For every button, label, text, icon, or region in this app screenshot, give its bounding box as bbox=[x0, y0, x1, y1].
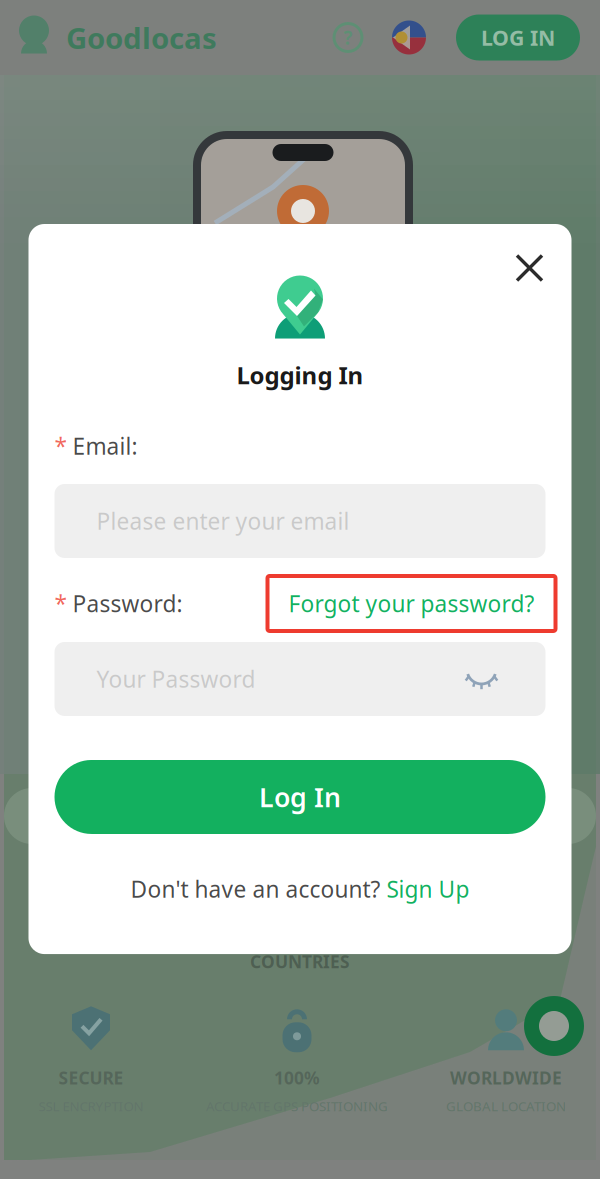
button[interactable]: Show password bbox=[464, 667, 498, 691]
staticText: LOG IN bbox=[481, 23, 555, 52]
staticText: Log In bbox=[259, 779, 341, 815]
staticText: Sign Up bbox=[386, 874, 469, 904]
staticText: WORLDWIDE bbox=[450, 1066, 562, 1089]
staticText: 100% bbox=[274, 1066, 320, 1089]
staticText: Email: bbox=[72, 431, 137, 461]
staticText: Password: bbox=[72, 588, 182, 618]
staticText: GLOBAL LOCATION bbox=[446, 1097, 566, 1115]
staticText: * bbox=[54, 431, 66, 461]
button[interactable]: Close bbox=[514, 253, 544, 283]
staticText: Goodlocas bbox=[66, 18, 217, 57]
staticText: Don't have an account? bbox=[130, 874, 386, 904]
staticText: Forgot your password? bbox=[288, 588, 534, 618]
staticText: Please enter your email bbox=[96, 506, 349, 536]
button[interactable]: Forgot your password? bbox=[267, 576, 555, 631]
staticText: * bbox=[54, 588, 66, 618]
staticText: SECURE bbox=[58, 1066, 123, 1089]
staticText: ACCURATE GPS POSITIONING bbox=[206, 1097, 388, 1115]
staticText: ? bbox=[343, 25, 352, 50]
staticText: Your Password bbox=[96, 664, 255, 694]
button[interactable]: Log In bbox=[54, 760, 545, 834]
button[interactable]: Sign Up bbox=[386, 874, 469, 904]
staticText: COUNTRIES bbox=[250, 950, 350, 973]
staticText: Logging In bbox=[236, 359, 363, 391]
